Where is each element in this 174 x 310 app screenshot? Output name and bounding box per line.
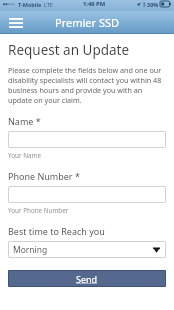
staticText: Phone Number *: [8, 170, 80, 182]
staticText: Premier SSD: [55, 15, 120, 30]
staticText: Morning: [13, 244, 48, 256]
button[interactable]: [8, 131, 166, 148]
staticText: Best time to Reach you: [8, 225, 105, 237]
staticText: 30%: [147, 1, 159, 8]
button[interactable]: [8, 186, 166, 203]
staticText: Name *: [8, 115, 41, 127]
staticText: Please complete the fields below and one…: [8, 65, 166, 105]
button[interactable]: Send: [8, 270, 166, 287]
staticText: 1:46 PM: [83, 0, 106, 8]
staticText: Your Name: [8, 151, 41, 160]
staticText: Send: [76, 273, 98, 285]
staticText: T-Mobile: [18, 1, 42, 8]
staticText: Your Phone Number: [8, 206, 69, 215]
button[interactable]: Morning: [8, 241, 166, 258]
staticText: LTE: [44, 1, 53, 8]
button[interactable]: Menu: [5, 14, 27, 32]
staticText: Request an Update: [8, 41, 130, 59]
